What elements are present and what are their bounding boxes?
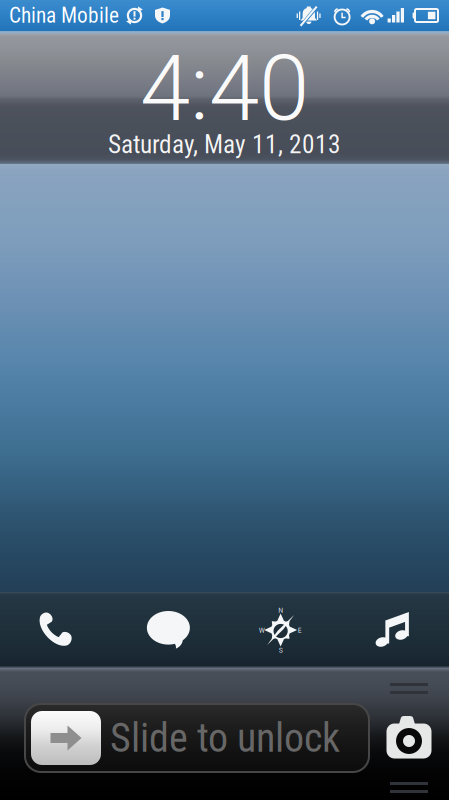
staticText: E (298, 625, 302, 635)
staticText: Slide to unlock (110, 715, 340, 761)
button[interactable]: Music (337, 592, 449, 668)
button[interactable]: Slide to unlock (25, 704, 369, 772)
staticText: W (259, 625, 265, 635)
staticText: China Mobile (9, 3, 119, 28)
staticText: 4:40 (140, 35, 309, 142)
staticText: N (278, 605, 283, 615)
staticText: S (279, 645, 283, 655)
button[interactable]: Camera (385, 683, 433, 793)
button[interactable]: Messages (112, 592, 224, 668)
button[interactable]: Phone (0, 592, 112, 668)
button[interactable]: Browser (224, 592, 337, 668)
staticText: Saturday, May 11, 2013 (108, 130, 341, 159)
